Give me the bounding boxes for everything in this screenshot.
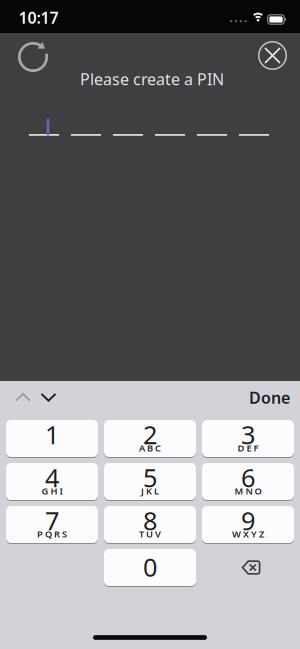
- button[interactable]: 3: [202, 420, 294, 458]
- staticText: M N O: [234, 485, 261, 497]
- staticText: 7: [45, 504, 59, 537]
- staticText: Done: [249, 387, 290, 408]
- staticText: W X Y Z: [232, 528, 264, 540]
- staticText: 2: [143, 418, 157, 451]
- staticText: D E F: [237, 442, 258, 454]
- staticText: 10:17: [18, 7, 58, 28]
- staticText: 5: [143, 461, 157, 494]
- button[interactable]: 4: [6, 463, 98, 501]
- staticText: P Q R S: [37, 528, 67, 540]
- button[interactable]: Reload: [18, 42, 48, 72]
- button[interactable]: 2: [104, 420, 196, 458]
- staticText: T U V: [139, 528, 161, 540]
- button[interactable]: 0: [104, 549, 196, 587]
- staticText: 9: [241, 504, 255, 537]
- staticText: A B C: [139, 442, 161, 454]
- button[interactable]: Close: [259, 42, 286, 69]
- button[interactable]: 6: [202, 463, 294, 501]
- button[interactable]: 9: [202, 506, 294, 544]
- staticText: J K L: [141, 485, 159, 497]
- staticText: 3: [241, 418, 255, 451]
- staticText: 6: [241, 461, 255, 494]
- button[interactable]: 5: [104, 463, 196, 501]
- staticText: 4: [45, 461, 59, 494]
- button[interactable]: 7: [6, 506, 98, 544]
- button[interactable]: Done: [249, 387, 290, 408]
- staticText: 1: [45, 418, 59, 451]
- button[interactable]: Next field: [40, 389, 56, 405]
- staticText: G H I: [41, 485, 62, 497]
- button[interactable]: 8: [104, 506, 196, 544]
- staticText: 0: [143, 550, 157, 584]
- button[interactable]: Home: [93, 635, 207, 640]
- button[interactable]: 1: [6, 420, 98, 458]
- staticText: Please create a PIN: [80, 68, 224, 90]
- button[interactable]: Previous field: [15, 389, 31, 405]
- staticText: 8: [143, 504, 157, 537]
- button[interactable]: Delete: [240, 559, 260, 575]
